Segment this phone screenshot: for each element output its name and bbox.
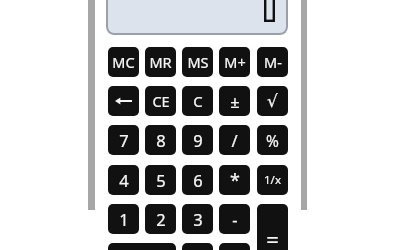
staticText: 3 bbox=[193, 208, 203, 230]
button[interactable]: = bbox=[257, 204, 288, 250]
button[interactable]: / bbox=[219, 125, 250, 155]
staticText: 1 bbox=[119, 208, 129, 230]
staticText: 2 bbox=[156, 208, 166, 230]
staticText: = bbox=[266, 224, 279, 250]
button[interactable]: MC bbox=[108, 47, 139, 77]
staticText: MR bbox=[149, 52, 172, 72]
button[interactable]: % bbox=[257, 125, 288, 155]
button[interactable]: 7 bbox=[108, 125, 139, 155]
button[interactable]: √ bbox=[257, 86, 288, 116]
button[interactable]: 3 bbox=[182, 204, 213, 234]
staticText: / bbox=[231, 129, 238, 151]
button[interactable]: 9 bbox=[182, 125, 213, 155]
staticText: 1/x bbox=[264, 172, 281, 188]
button[interactable]: + bbox=[219, 243, 250, 250]
button[interactable]: 1 bbox=[108, 204, 139, 234]
staticText: √ bbox=[267, 91, 278, 111]
button[interactable]: 5 bbox=[145, 165, 176, 195]
staticText: % bbox=[266, 130, 279, 151]
staticText: 9 bbox=[193, 129, 203, 151]
button[interactable]: ± bbox=[219, 86, 250, 116]
staticText: 6 bbox=[193, 169, 203, 191]
staticText: * bbox=[230, 168, 240, 193]
staticText: CE bbox=[152, 91, 170, 111]
staticText: 5 bbox=[156, 169, 166, 191]
button[interactable]: 4 bbox=[108, 165, 139, 195]
button[interactable]: CE bbox=[145, 86, 176, 116]
button[interactable]: C bbox=[182, 86, 213, 116]
button[interactable]: 6 bbox=[182, 165, 213, 195]
staticText: ± bbox=[230, 90, 240, 112]
staticText: M+ bbox=[224, 52, 246, 72]
button[interactable]: MR bbox=[145, 47, 176, 77]
button[interactable]: Backspace bbox=[108, 86, 139, 116]
staticText: - bbox=[232, 208, 238, 230]
staticText: 4 bbox=[119, 169, 129, 191]
staticText: 8 bbox=[156, 129, 166, 151]
button[interactable]: - bbox=[219, 204, 250, 234]
button[interactable]: 1/x bbox=[257, 165, 288, 195]
staticText: MC bbox=[112, 52, 135, 72]
staticText: M- bbox=[264, 52, 282, 72]
button[interactable]: MS bbox=[182, 47, 213, 77]
staticText: MS bbox=[187, 52, 209, 72]
button[interactable]: . bbox=[182, 243, 213, 250]
button[interactable]: 2 bbox=[145, 204, 176, 234]
staticText: 7 bbox=[119, 129, 129, 151]
button[interactable]: 0 bbox=[108, 243, 176, 250]
button[interactable]: 8 bbox=[145, 125, 176, 155]
button[interactable]: M+ bbox=[219, 47, 250, 77]
button[interactable]: M- bbox=[257, 47, 288, 77]
button[interactable]: * bbox=[219, 165, 250, 195]
staticText: C bbox=[193, 91, 203, 111]
